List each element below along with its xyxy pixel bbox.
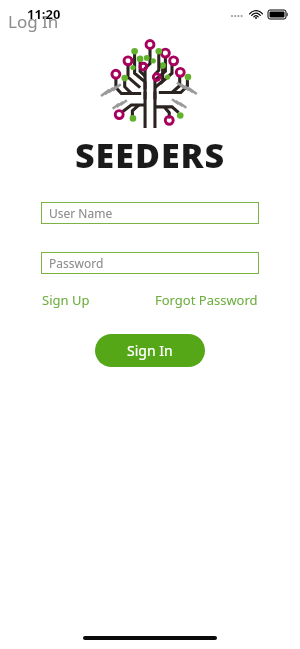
staticText: 11:20	[27, 5, 61, 23]
button[interactable]: Sign Up	[41, 288, 91, 312]
staticText: Log In	[8, 10, 59, 33]
staticText: Sign In	[127, 341, 173, 360]
staticText: Password	[49, 255, 104, 271]
staticText: Sign Up	[42, 291, 90, 309]
button[interactable]: Forgot Password	[154, 288, 259, 312]
staticText: User Name	[49, 205, 113, 221]
button[interactable]: User Name	[41, 202, 259, 224]
staticText: SEEDERS	[75, 132, 226, 178]
button[interactable]: Sign In	[95, 334, 205, 367]
button[interactable]: Password	[41, 252, 259, 274]
staticText: Forgot Password	[155, 291, 258, 309]
